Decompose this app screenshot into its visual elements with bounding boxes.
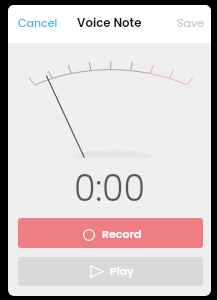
button[interactable]: Save bbox=[168, 7, 211, 38]
button[interactable]: Play bbox=[18, 257, 203, 286]
button[interactable]: Record bbox=[18, 218, 203, 248]
button[interactable]: Cancel bbox=[8, 7, 68, 38]
staticText: Play bbox=[110, 263, 134, 278]
staticText: Record bbox=[102, 226, 142, 241]
staticText: Save bbox=[177, 15, 204, 30]
staticText: Cancel bbox=[18, 15, 58, 30]
staticText: Voice Note bbox=[77, 15, 142, 32]
staticText: 0:00 bbox=[8, 164, 211, 213]
